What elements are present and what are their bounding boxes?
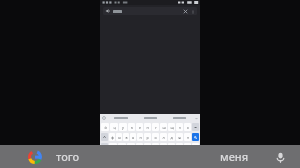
staticText: щ: [170, 125, 174, 130]
button[interactable]: ь: [160, 143, 167, 151]
button[interactable]: Backspace: [192, 123, 199, 131]
staticText: ц: [113, 125, 116, 130]
button[interactable]: е: [136, 123, 143, 131]
button[interactable]: Back: [105, 8, 111, 14]
staticText: р: [146, 135, 149, 140]
button[interactable]: а: [130, 133, 136, 141]
button[interactable]: [102, 116, 106, 120]
button[interactable]: р: [144, 133, 151, 141]
staticText: ж: [178, 135, 181, 140]
button[interactable]: м: [136, 143, 143, 151]
button[interactable]: ю: [176, 143, 183, 151]
button[interactable]: б: [168, 143, 175, 151]
button[interactable]: я: [109, 143, 117, 151]
button[interactable]: ?: [192, 143, 199, 151]
button[interactable]: з: [176, 123, 183, 131]
button[interactable]: л: [160, 133, 167, 141]
button[interactable]: ш: [160, 123, 167, 131]
staticText: ы: [118, 135, 121, 140]
button[interactable]: г: [152, 123, 159, 131]
staticText: у: [122, 125, 124, 130]
button[interactable]: меня: [200, 145, 300, 168]
staticText: г: [155, 125, 157, 130]
button[interactable]: в: [123, 133, 129, 141]
button[interactable]: ж: [176, 133, 183, 141]
staticText: о: [154, 135, 157, 140]
button[interactable]: и: [144, 143, 151, 151]
staticText: меня: [220, 149, 249, 164]
button[interactable]: More options: [190, 9, 195, 14]
button[interactable]: т: [152, 143, 159, 151]
button[interactable]: й: [101, 123, 109, 131]
button[interactable]: Clear: [183, 9, 188, 14]
button[interactable]: щ: [168, 123, 175, 131]
staticText: э: [187, 135, 189, 140]
button[interactable]: э: [184, 133, 191, 141]
staticText: того: [56, 149, 80, 164]
staticText: а: [132, 135, 134, 140]
button[interactable]: того: [0, 145, 100, 168]
button[interactable]: Back: [103, 7, 197, 15]
staticText: е: [139, 125, 141, 130]
staticText: н: [146, 125, 149, 130]
button[interactable]: [136, 114, 165, 122]
button[interactable]: .: [184, 143, 191, 151]
button[interactable]: н: [144, 123, 151, 131]
button[interactable]: Expand suggestions: [194, 116, 198, 120]
staticText: ш: [162, 125, 166, 130]
button[interactable]: д: [168, 133, 175, 141]
button[interactable]: [106, 114, 136, 122]
button[interactable]: о: [152, 133, 159, 141]
staticText: з: [179, 125, 181, 130]
button[interactable]: Shift: [101, 133, 108, 141]
button[interactable]: к: [128, 123, 135, 131]
staticText: в: [125, 135, 128, 140]
button[interactable]: [165, 114, 194, 122]
button[interactable]: Voice search: [272, 149, 288, 165]
button[interactable]: у: [119, 123, 127, 131]
button[interactable]: с: [127, 143, 135, 151]
staticText: л: [162, 135, 165, 140]
button[interactable]: ф: [109, 133, 115, 141]
button[interactable]: ч: [118, 143, 126, 151]
staticText: п: [139, 135, 142, 140]
button[interactable]: х: [184, 123, 191, 131]
staticText: ф: [111, 135, 114, 140]
button[interactable]: ы: [116, 133, 122, 141]
button[interactable]: ц: [110, 123, 118, 131]
staticText: к: [131, 125, 133, 130]
staticText: д: [170, 135, 173, 140]
button[interactable]: Shift: [101, 143, 108, 151]
staticText: й: [104, 125, 107, 130]
button[interactable]: п: [137, 133, 143, 141]
button[interactable]: Search: [192, 133, 199, 141]
staticText: х: [187, 125, 189, 130]
